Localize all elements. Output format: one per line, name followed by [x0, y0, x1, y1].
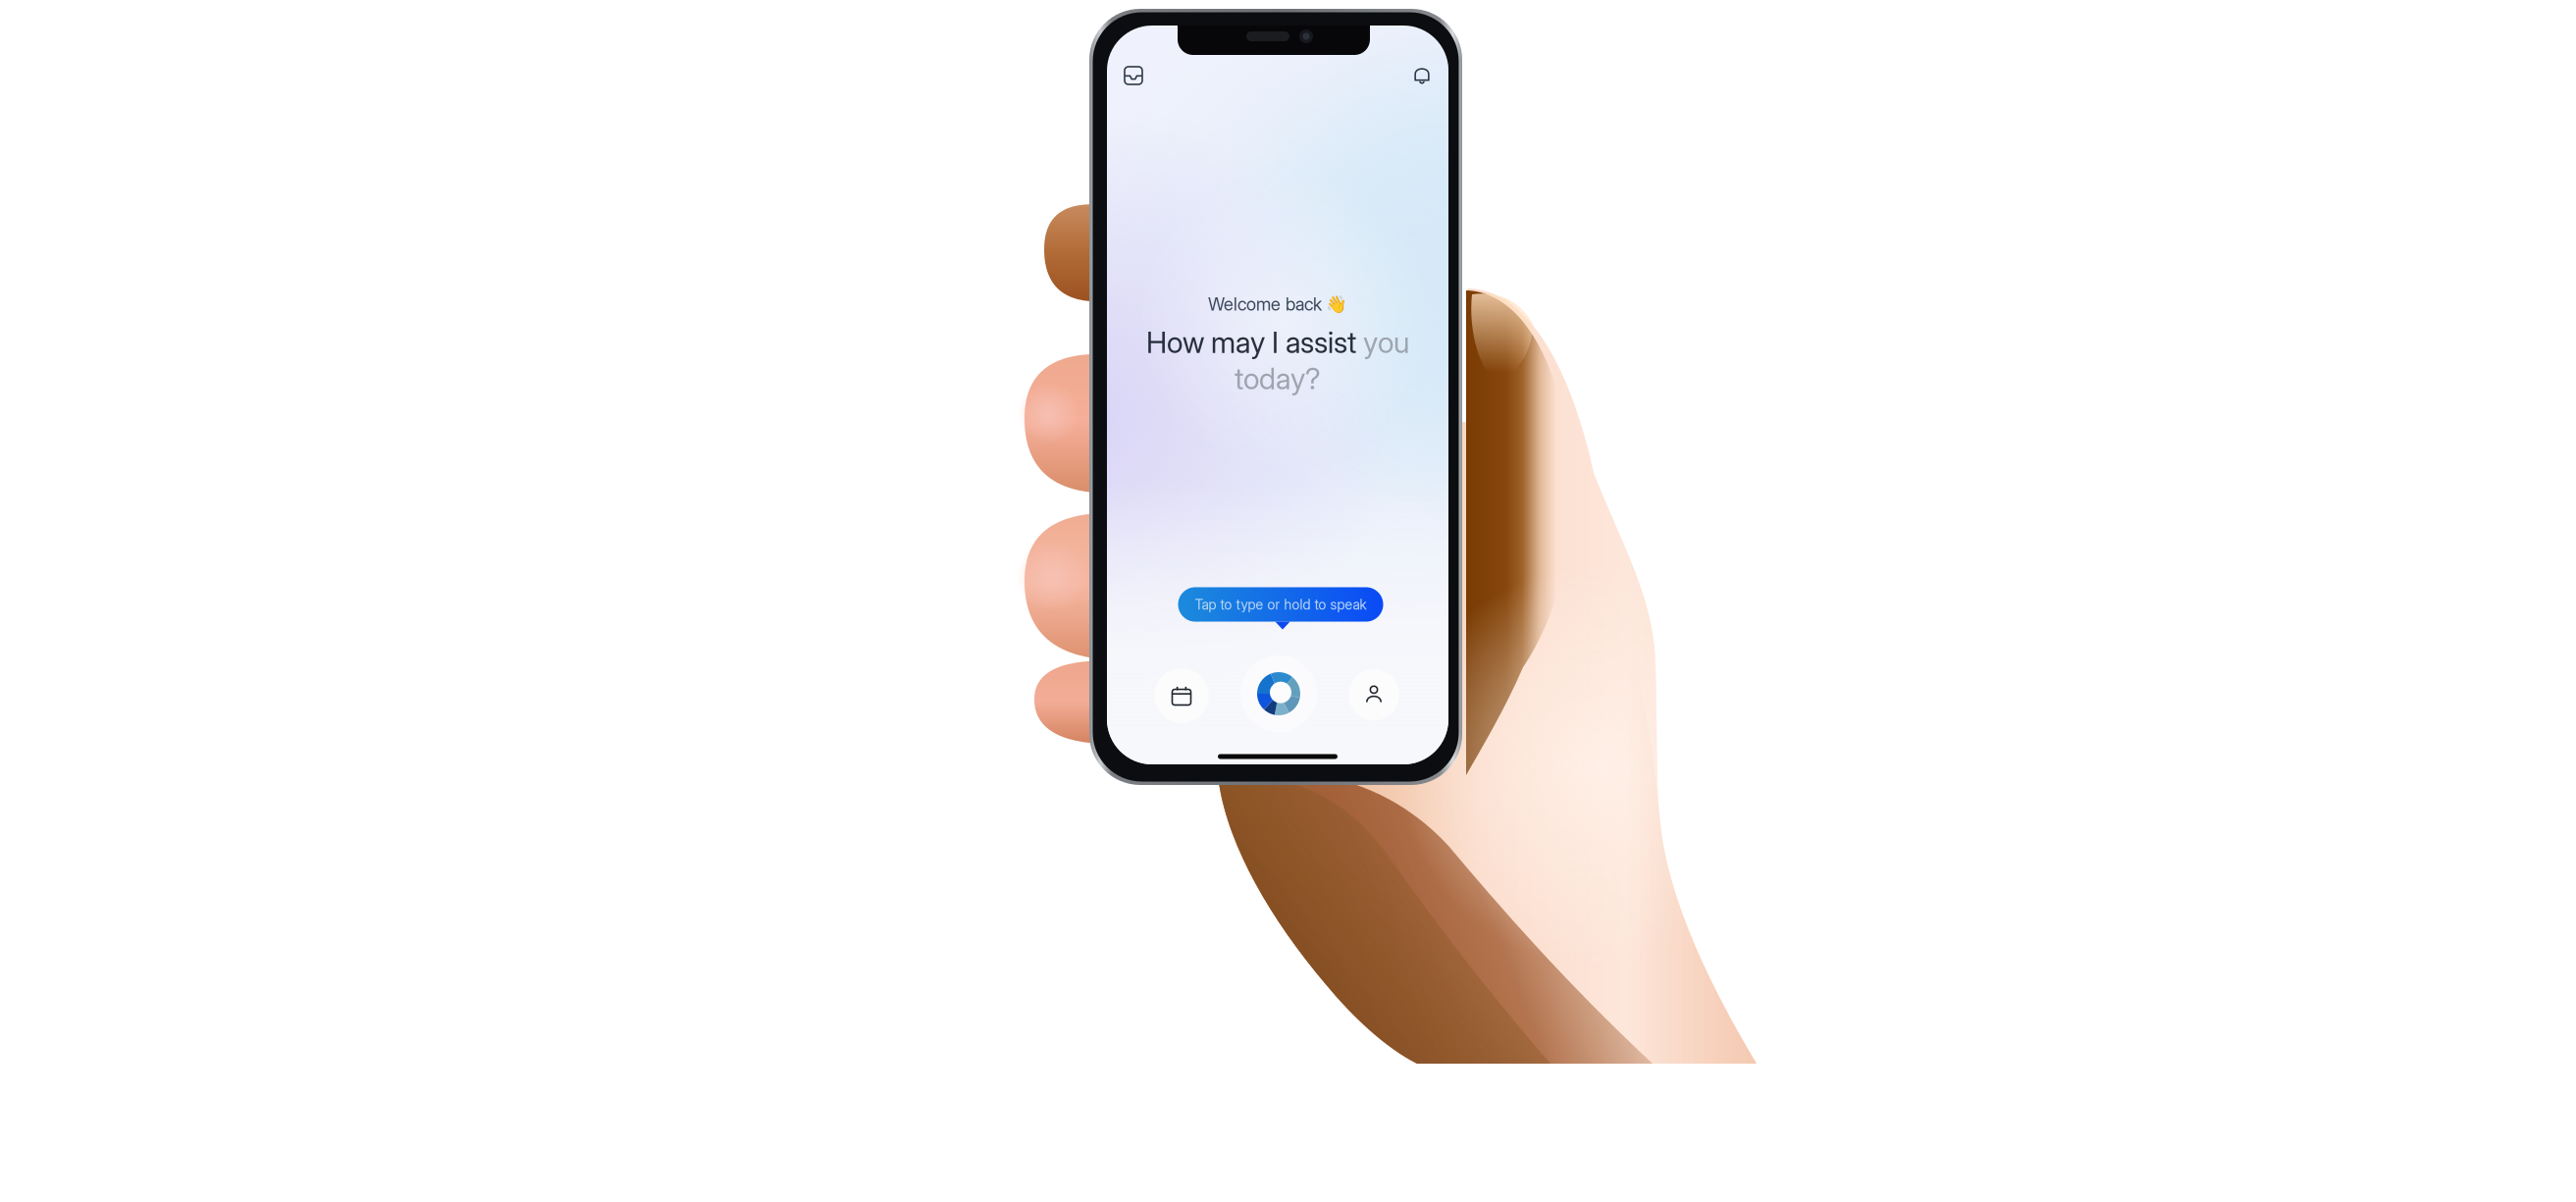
staticText: you	[1363, 325, 1409, 360]
button[interactable]: Calendar	[1154, 668, 1209, 723]
staticText: Welcome back	[1208, 293, 1322, 315]
staticText: How may I assist	[1146, 325, 1363, 360]
button[interactable]: Profile	[1348, 669, 1399, 720]
staticText: Tap to type or hold to speak	[1195, 596, 1367, 613]
button[interactable]: Inbox	[1116, 58, 1151, 93]
button[interactable]: Assistant	[1240, 655, 1317, 732]
staticText: today?	[1235, 361, 1321, 396]
button[interactable]: Notifications	[1404, 58, 1440, 93]
staticText: 👋	[1326, 294, 1347, 314]
